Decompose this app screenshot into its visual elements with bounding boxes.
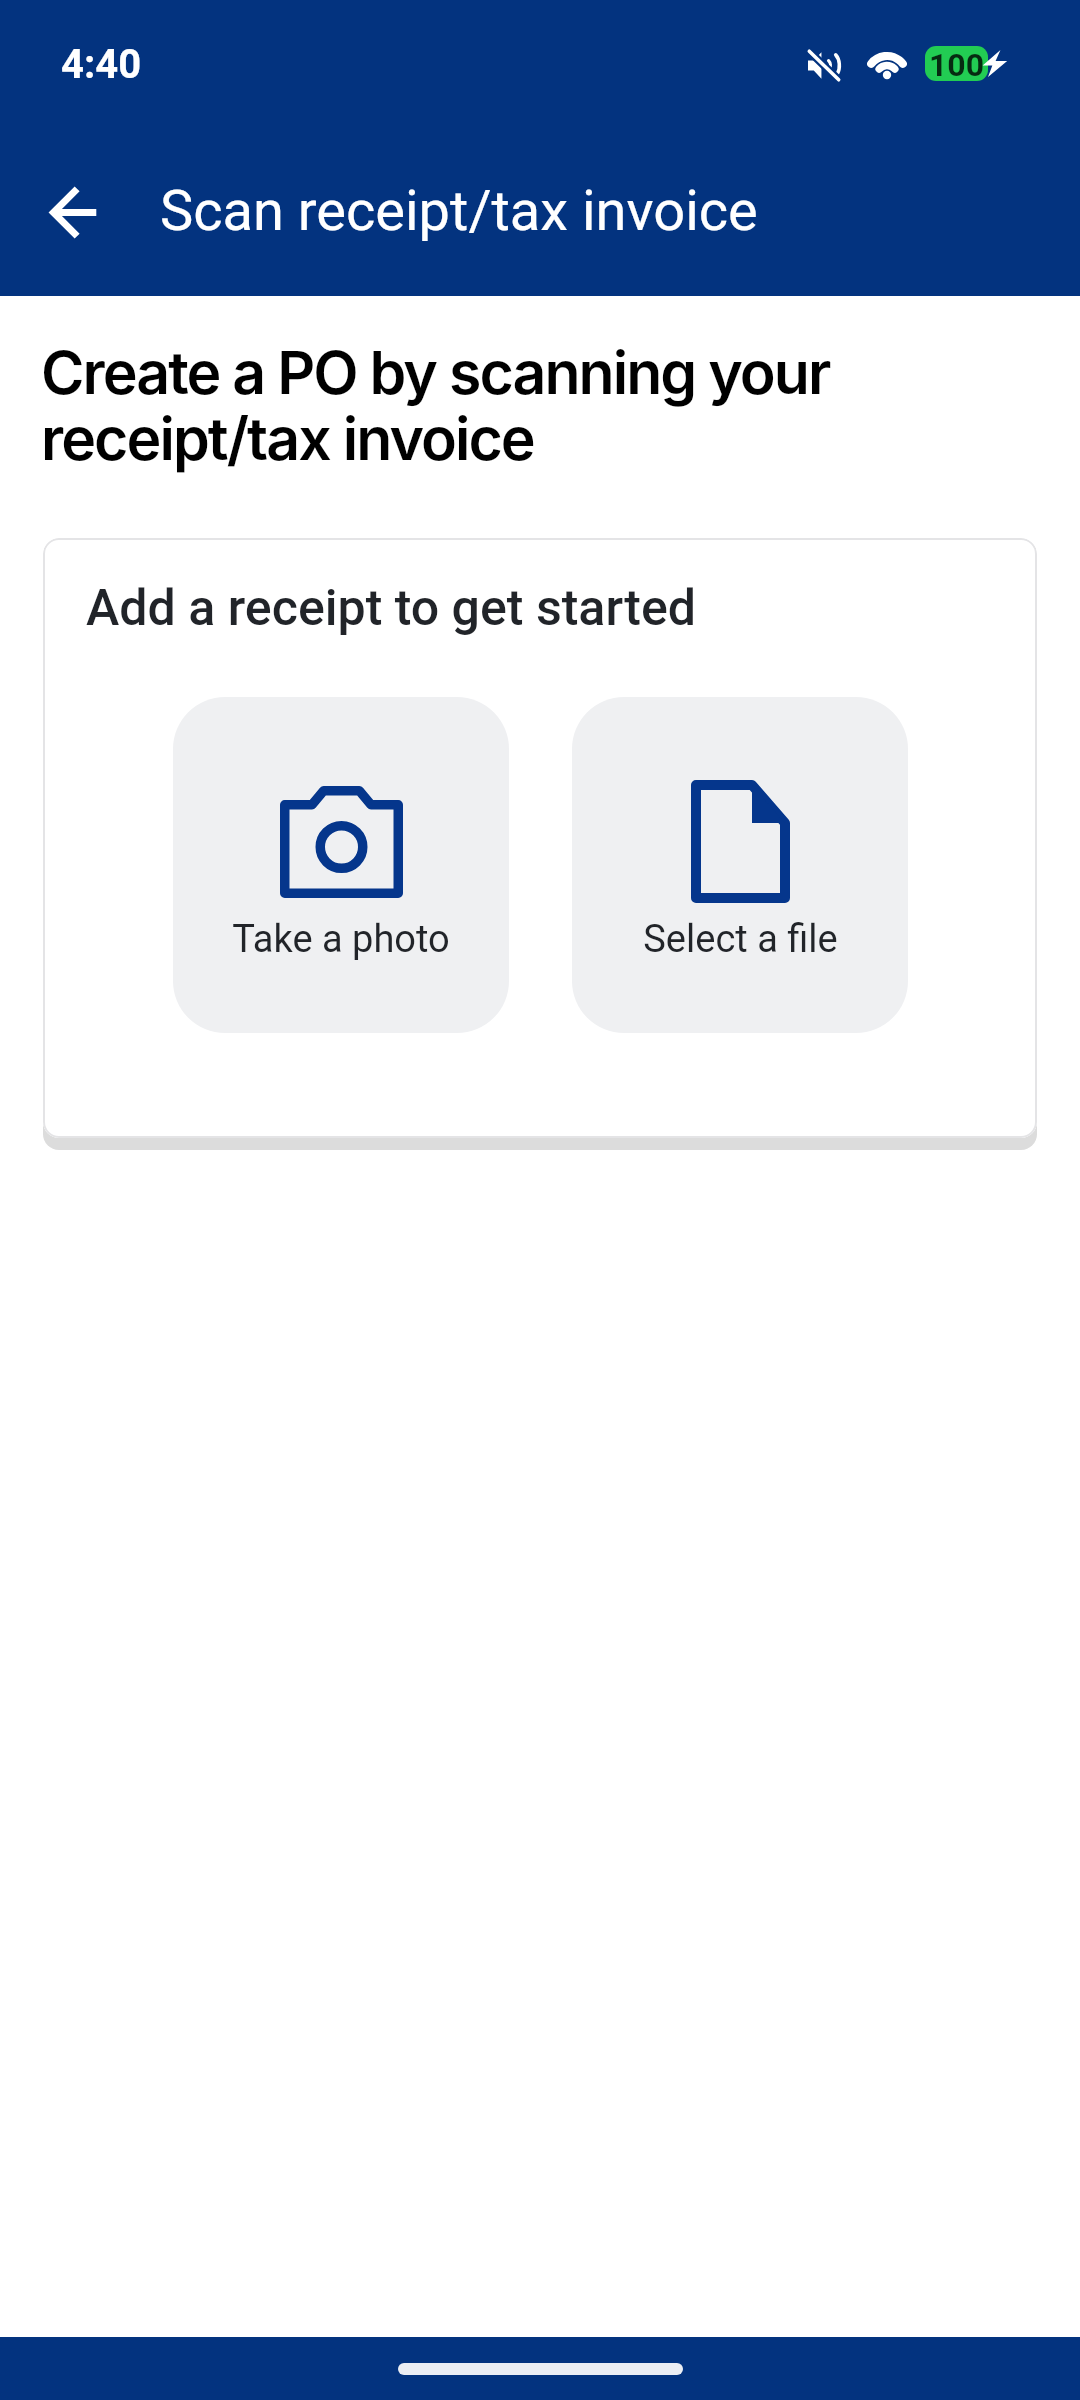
button[interactable]: Take a photo [173,697,509,1033]
staticText: Add a receipt to get started [86,579,696,638]
staticText: Select a file [643,917,838,962]
button[interactable]: Select a file [572,697,908,1033]
staticText: 100 [929,46,985,81]
staticText: Take a photo [232,917,450,962]
staticText: Scan receipt/tax invoice [160,178,758,244]
button[interactable]: Back [25,164,121,260]
staticText: Create a PO by scanning your receipt/tax… [41,337,830,474]
staticText: 4:40 [61,41,142,88]
